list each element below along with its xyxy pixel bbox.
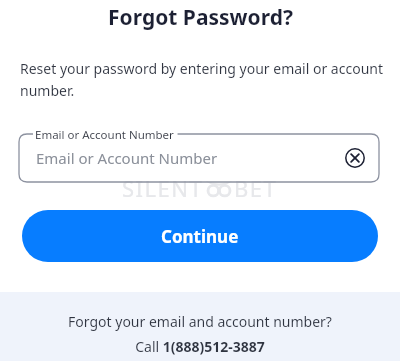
button[interactable]: Clear text [343, 146, 367, 170]
staticText: Continue [161, 225, 239, 248]
staticText: Reset your password by entering your ema… [20, 59, 388, 100]
staticText: BET [234, 173, 278, 203]
staticText: Forgot Password? [108, 3, 293, 31]
staticText: SILENT [122, 173, 204, 203]
button[interactable]: Email or Account Number [19, 134, 379, 182]
staticText: Call 1(888)512-3887 [135, 337, 265, 356]
button[interactable]: Continue [22, 210, 378, 262]
button[interactable]: Forgot your email and account number? [0, 292, 400, 361]
staticText: Forgot your email and account number? [68, 312, 332, 331]
staticText: Email or Account Number [36, 148, 218, 168]
staticText: Email or Account Number [35, 127, 174, 143]
